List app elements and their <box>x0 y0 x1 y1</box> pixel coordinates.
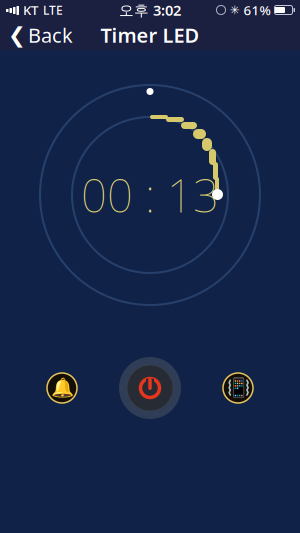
staticText: 📳 <box>226 377 249 399</box>
staticText: Back <box>28 22 73 48</box>
staticText: KT <box>23 1 38 19</box>
staticText: Timer LED <box>100 22 199 48</box>
staticText: 61% <box>243 1 270 19</box>
staticText: ✳ <box>229 3 239 17</box>
button[interactable]: Vibrate <box>216 366 260 410</box>
button[interactable]: Power <box>115 353 185 423</box>
staticText: 오후 3:02 <box>119 0 181 20</box>
staticText: 🔔 <box>50 377 73 399</box>
staticText: ❮ <box>8 23 26 47</box>
staticText: 00 : 13 <box>81 165 219 225</box>
button[interactable]: ❮ <box>0 17 83 53</box>
staticText: LTE <box>43 2 63 18</box>
button[interactable]: Alarm sound <box>40 366 84 410</box>
